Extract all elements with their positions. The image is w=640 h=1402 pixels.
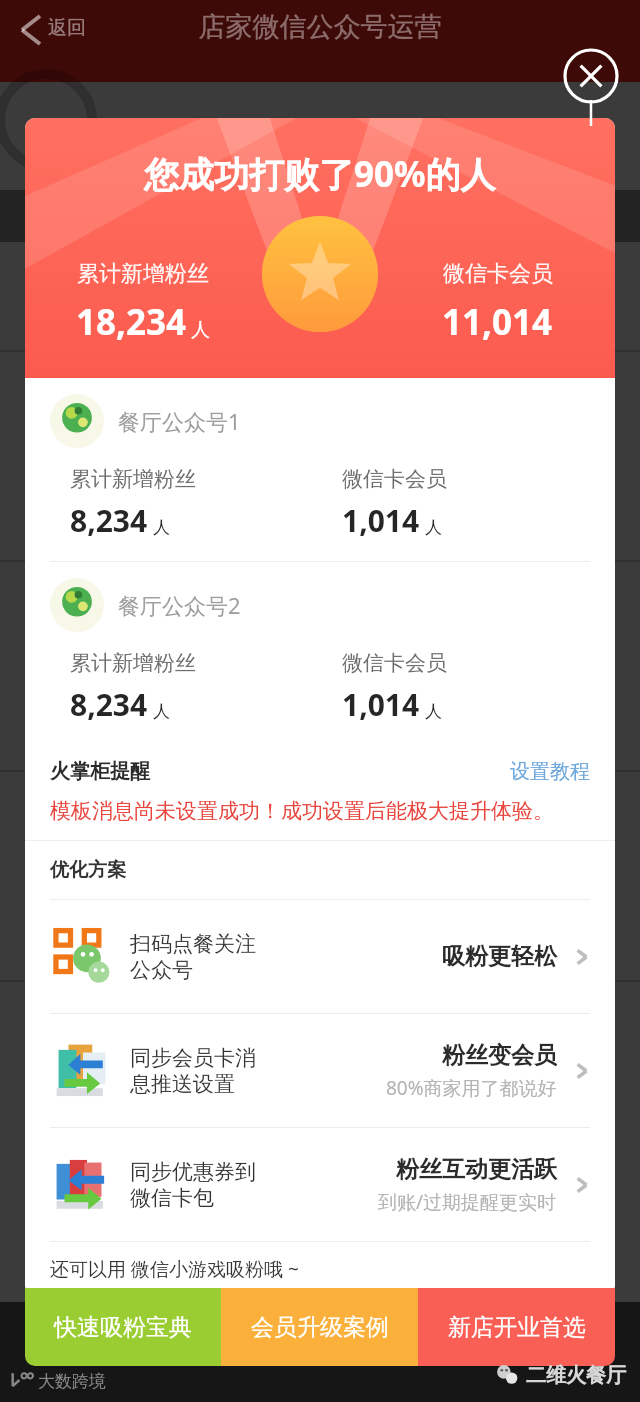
staticText: 人 (425, 517, 442, 538)
button[interactable]: 关闭 (562, 48, 620, 126)
staticText: 人 (425, 701, 442, 722)
staticText: 同步优惠券到 (130, 1159, 256, 1185)
staticText: 设置教程 (510, 759, 590, 784)
staticText: 8,234 (70, 500, 148, 541)
staticText: 大数跨境 (38, 1371, 106, 1392)
staticText: 扫码点餐关注 (130, 931, 256, 957)
staticText: 同步会员卡消 (130, 1045, 256, 1071)
button[interactable]: 餐厅公众号2 (25, 562, 615, 745)
staticText: 公众号 (130, 957, 193, 983)
staticText: 8,234 (70, 684, 148, 725)
staticText: 息推送设置 (130, 1071, 235, 1097)
staticText: 模板消息尚未设置成功！成功设置后能极大提升体验。 (50, 798, 554, 824)
other: 查看详情 (571, 1060, 593, 1082)
button[interactable]: 会员升级案例 (221, 1288, 418, 1366)
button[interactable]: 同步会员卡消 (25, 1014, 615, 1127)
staticText: 返回 (48, 16, 86, 40)
staticText: 优化方案 (50, 858, 126, 882)
button[interactable]: 同步优惠券到 (25, 1128, 615, 1241)
button[interactable]: 扫码点餐关注 (25, 900, 615, 1013)
staticText: 累计新增粉丝 (70, 466, 196, 492)
staticText: 快速吸粉宝典 (54, 1313, 192, 1342)
staticText: 人 (153, 701, 170, 722)
staticText: 1,014 (342, 500, 420, 541)
button[interactable]: 新店开业首选 (418, 1288, 615, 1366)
staticText: 微信卡包 (130, 1185, 214, 1211)
staticText: 餐厅公众号2 (118, 590, 241, 620)
staticText: 人 (191, 318, 210, 342)
staticText: 80%商家用了都说好 (386, 1075, 557, 1101)
staticText: 到账/过期提醒更实时 (378, 1189, 557, 1215)
staticText: 人 (153, 517, 170, 538)
staticText: 火掌柜提醒 (50, 759, 150, 784)
staticText: 18,234 (76, 298, 187, 346)
staticText: 吸粉更轻松 (442, 942, 557, 971)
button[interactable]: 快速吸粉宝典 (25, 1288, 221, 1366)
staticText: 11,014 (442, 298, 553, 346)
staticText: 您成功打败了90%的人 (144, 150, 496, 198)
button[interactable]: 餐厅公众号1 (25, 378, 615, 561)
staticText: 还可以用 微信小游戏吸粉哦 ~ (50, 1256, 299, 1282)
button[interactable]: 设置教程 (510, 759, 590, 784)
staticText: 微信卡会员 (443, 260, 553, 288)
other: 查看详情 (571, 946, 593, 968)
staticText: 微信卡会员 (342, 650, 447, 676)
staticText: 累计新增粉丝 (70, 650, 196, 676)
staticText: 二维火餐厅 (526, 1363, 626, 1388)
staticText: 会员升级案例 (251, 1313, 389, 1342)
staticText: 微信卡会员 (342, 466, 447, 492)
staticText: 新店开业首选 (448, 1313, 586, 1342)
staticText: 累计新增粉丝 (77, 260, 209, 288)
staticText: 粉丝变会员 (442, 1041, 557, 1070)
staticText: 粉丝互动更活跃 (396, 1155, 557, 1184)
staticText: 餐厅公众号1 (118, 406, 241, 436)
staticText: 店家微信公众号运营 (0, 10, 640, 44)
staticText: 1,014 (342, 684, 420, 725)
other: 查看详情 (571, 1174, 593, 1196)
